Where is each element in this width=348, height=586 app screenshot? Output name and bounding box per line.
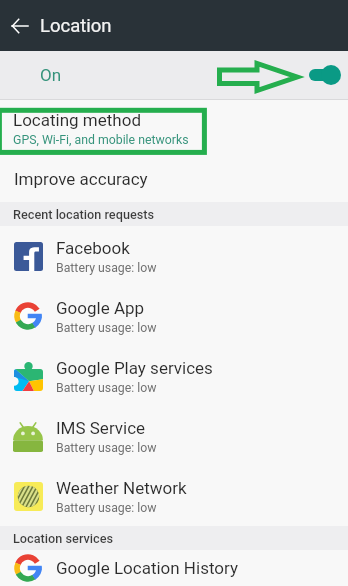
button[interactable]: IMS Service [0,406,348,466]
staticText: GPS, Wi-Fi, and mobile networks [13,133,189,147]
staticText: On [40,65,62,85]
button[interactable]: Improve accuracy [0,156,348,202]
staticText: Battery usage: low [56,381,157,395]
button[interactable]: Google App [0,286,348,346]
staticText: Battery usage: low [56,501,157,515]
staticText: Location [40,15,112,37]
staticText: Google Location History [56,558,238,578]
staticText: Facebook [56,238,130,258]
staticText: Battery usage: low [56,261,157,275]
staticText: Google App [56,298,145,318]
staticText: Improve accuracy [14,169,148,189]
button[interactable]: Locating method [0,100,348,156]
staticText: Weather Network [56,478,187,498]
button[interactable]: Back [0,6,40,46]
staticText: Battery usage: low [56,441,157,455]
staticText: Google Play services [56,358,213,378]
staticText: Battery usage: low [56,321,157,335]
staticText: Locating method [13,110,141,130]
staticText: Location services [13,531,113,546]
staticText: IMS Service [56,418,146,438]
button[interactable]: Weather Network [0,466,348,526]
button[interactable]: Google Play services [0,346,348,406]
button[interactable]: Facebook [0,226,348,286]
button[interactable]: On [0,51,348,99]
button[interactable]: Google Location History [0,550,348,586]
staticText: Recent location requests [13,207,155,222]
